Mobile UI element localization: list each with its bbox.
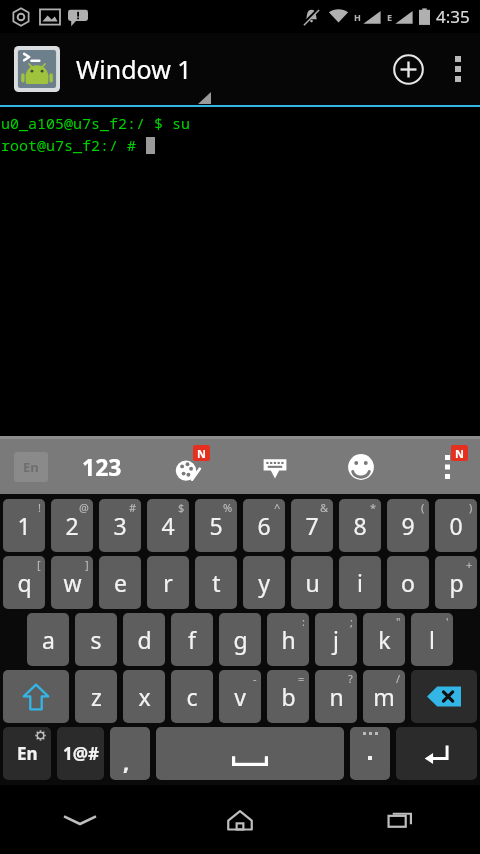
staticText: n <box>329 681 344 712</box>
button[interactable]: Hide keyboard <box>0 785 160 854</box>
button[interactable]: o <box>387 556 429 609</box>
staticText: Window 1 <box>76 52 192 86</box>
button[interactable]: 5 <box>195 499 237 552</box>
button[interactable]: t <box>195 556 237 609</box>
staticText: 2 <box>65 510 79 541</box>
staticText: ; <box>350 614 353 629</box>
button[interactable]: Space <box>156 727 344 780</box>
button[interactable]: 1 <box>3 499 45 552</box>
button[interactable]: z <box>75 670 117 723</box>
button[interactable]: 0 <box>435 499 477 552</box>
button[interactable]: u <box>291 556 333 609</box>
button[interactable]: k <box>363 613 405 666</box>
staticText: * <box>370 500 377 515</box>
button[interactable]: Enter <box>396 727 477 780</box>
button[interactable]: v <box>219 670 261 723</box>
staticText: w <box>63 567 82 598</box>
staticText: 9 <box>401 510 415 541</box>
staticText: 3 <box>113 510 127 541</box>
button[interactable]: More options <box>436 33 480 105</box>
button[interactable]: 3 <box>99 499 141 552</box>
staticText: v <box>234 681 246 712</box>
staticText: 4 <box>161 510 175 541</box>
button[interactable]: l <box>411 613 453 666</box>
button[interactable]: 2 <box>51 499 93 552</box>
staticText: c <box>186 681 198 712</box>
staticText: b <box>281 681 296 712</box>
staticText: e <box>114 567 127 598</box>
staticText: 6 <box>257 510 271 541</box>
staticText: 1@# <box>63 742 99 765</box>
staticText: N <box>455 446 464 461</box>
button[interactable]: , <box>110 727 150 780</box>
staticText: ? <box>348 671 353 686</box>
staticText: q <box>17 567 32 598</box>
button[interactable]: m <box>363 670 405 723</box>
button[interactable]: d <box>123 613 165 666</box>
staticText: % <box>223 500 233 515</box>
button[interactable]: r <box>147 556 189 609</box>
button[interactable]: c <box>171 670 213 723</box>
button[interactable]: 4 <box>147 499 189 552</box>
button[interactable]: Hide keyboard <box>252 443 298 491</box>
button[interactable]: Themes <box>166 443 212 491</box>
button[interactable]: w <box>51 556 93 609</box>
staticText: E <box>387 11 393 23</box>
staticText: o <box>401 567 415 598</box>
staticText: N <box>197 446 206 461</box>
staticText: / <box>396 671 401 686</box>
staticText: t <box>212 567 221 598</box>
button[interactable]: En <box>3 727 51 780</box>
button[interactable]: 6 <box>243 499 285 552</box>
button[interactable]: g <box>219 613 261 666</box>
staticText: s <box>90 624 102 655</box>
staticText: f <box>188 624 196 655</box>
staticText: root@u7s_f2:/ # <box>1 135 146 155</box>
button[interactable]: s <box>75 613 117 666</box>
staticText: ] <box>85 557 89 572</box>
button[interactable]: i <box>339 556 381 609</box>
button[interactable]: En <box>14 452 48 482</box>
button[interactable]: a <box>27 613 69 666</box>
button[interactable]: j <box>315 613 357 666</box>
button[interactable]: q <box>3 556 45 609</box>
staticText: u <box>305 567 320 598</box>
button[interactable]: u0_a105@u7s_f2:/ $ su <box>0 107 480 436</box>
button[interactable]: y <box>243 556 285 609</box>
button[interactable]: e <box>99 556 141 609</box>
button[interactable]: Recent apps <box>320 785 480 854</box>
button[interactable]: Emoji <box>338 443 384 491</box>
button[interactable]: 1@# <box>57 727 104 780</box>
button[interactable]: f <box>171 613 213 666</box>
button[interactable]: n <box>315 670 357 723</box>
button[interactable] <box>350 727 390 780</box>
button[interactable]: b <box>267 670 309 723</box>
button[interactable]: New window <box>380 41 436 97</box>
button[interactable]: x <box>123 670 165 723</box>
staticText: ' <box>446 614 449 629</box>
button[interactable]: h <box>267 613 309 666</box>
staticText: 8 <box>353 510 367 541</box>
button[interactable]: 123 <box>78 447 126 486</box>
staticText: # <box>129 500 137 515</box>
button[interactable]: Keyboard settings <box>424 443 470 491</box>
staticText: & <box>320 500 329 515</box>
button[interactable]: p <box>435 556 477 609</box>
staticText: - <box>253 671 257 686</box>
button[interactable]: 9 <box>387 499 429 552</box>
button[interactable]: Home <box>160 785 320 854</box>
staticText: En <box>23 458 39 476</box>
staticText: j <box>333 624 339 655</box>
staticText: l <box>429 624 435 655</box>
button[interactable]: Backspace <box>411 670 477 723</box>
staticText: 7 <box>305 510 319 541</box>
staticText: m <box>373 681 395 712</box>
button[interactable]: 8 <box>339 499 381 552</box>
staticText: h <box>281 624 296 655</box>
staticText: + <box>466 557 473 572</box>
staticText: ) <box>469 500 473 515</box>
button[interactable]: 7 <box>291 499 333 552</box>
staticText: i <box>357 567 363 598</box>
staticText: = <box>298 671 305 686</box>
button[interactable]: Shift <box>3 670 69 723</box>
